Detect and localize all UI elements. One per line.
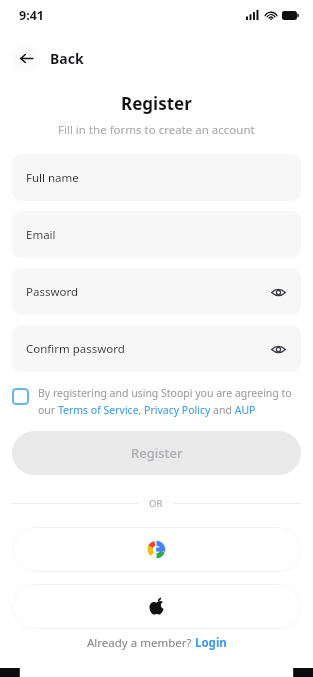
button[interactable]: Already a member? xyxy=(87,635,227,651)
button[interactable]: Email xyxy=(12,211,301,258)
button[interactable]: Password xyxy=(12,268,301,315)
staticText: Register xyxy=(121,92,192,115)
button[interactable]: Confirm password xyxy=(12,325,301,372)
staticText: Login xyxy=(195,635,227,651)
button[interactable]: Sign up with Apple xyxy=(12,584,301,629)
staticText: Register xyxy=(131,444,183,462)
staticText: By registering and using Stoopi you are … xyxy=(38,386,301,417)
staticText: Password xyxy=(26,284,79,300)
staticText: 9:41 xyxy=(19,7,44,24)
staticText: Fill in the forms to create an account xyxy=(58,122,255,138)
staticText: Full name xyxy=(26,170,79,186)
staticText: OR xyxy=(149,497,163,510)
staticText: Confirm password xyxy=(26,341,125,357)
button[interactable]: Accept terms xyxy=(12,386,301,417)
button[interactable]: Full name xyxy=(12,154,301,201)
staticText: Back xyxy=(50,49,84,68)
button[interactable]: Back xyxy=(12,44,94,72)
other: Back xyxy=(12,44,40,72)
button[interactable]: Show password xyxy=(265,279,291,305)
button[interactable]: Register xyxy=(12,431,301,475)
button[interactable]: Show password xyxy=(265,336,291,362)
other: Accept terms xyxy=(12,388,29,405)
staticText: Already a member? xyxy=(87,635,195,651)
staticText: Email xyxy=(26,227,56,243)
button[interactable]: Sign up with Google xyxy=(12,527,301,572)
